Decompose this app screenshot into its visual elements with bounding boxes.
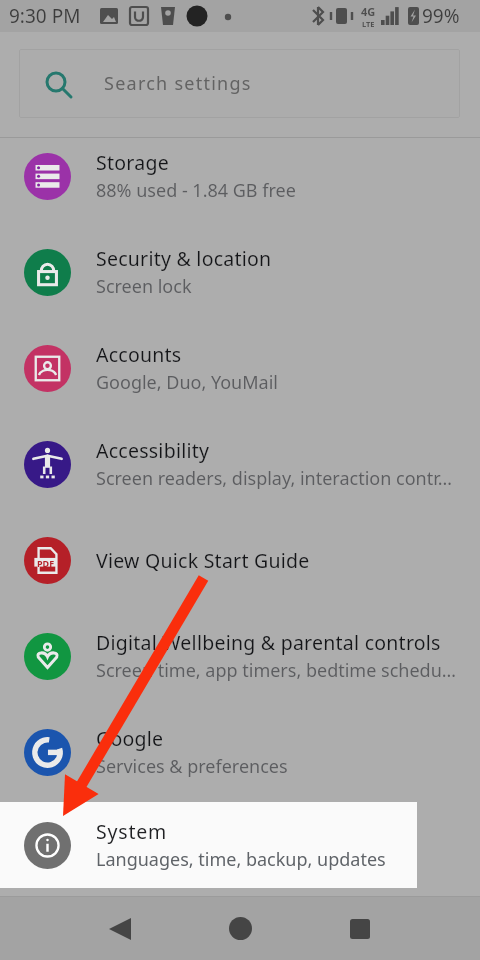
button[interactable]: Google xyxy=(0,704,480,800)
staticText: 99% xyxy=(422,3,460,29)
staticText: Screen readers, display, interaction con… xyxy=(96,466,452,491)
button[interactable]: Security & location xyxy=(0,224,480,320)
staticText: Services & preferences xyxy=(96,754,288,779)
staticText: PDF xyxy=(37,557,55,569)
staticText: Digital Wellbeing & parental controls xyxy=(96,629,441,656)
button[interactable]: PDF xyxy=(0,512,480,608)
button[interactable]: Digital Wellbeing & parental controls xyxy=(0,608,480,704)
staticText: LTE xyxy=(362,19,375,29)
staticText: View Quick Start Guide xyxy=(96,547,310,574)
staticText: Screen time, app timers, bedtime schedu… xyxy=(96,658,456,683)
button[interactable]: Back xyxy=(90,897,150,960)
button[interactable]: Search settings xyxy=(19,49,460,118)
button[interactable]: Recents xyxy=(330,897,390,960)
staticText: 4G xyxy=(361,4,376,19)
staticText: Accounts xyxy=(96,341,182,368)
staticText: Google, Duo, YouMail xyxy=(96,370,278,395)
button[interactable]: Storage xyxy=(0,128,480,224)
staticText: Security & location xyxy=(96,245,272,272)
staticText: 9:30 PM xyxy=(9,3,81,29)
button[interactable]: System xyxy=(0,802,417,888)
staticText: Search settings xyxy=(104,71,252,96)
staticText: 88% used - 1.84 GB free xyxy=(96,178,296,203)
button[interactable]: Accessibility xyxy=(0,416,480,512)
staticText: System xyxy=(96,818,168,845)
staticText: Accessibility xyxy=(96,437,210,464)
staticText: Languages, time, backup, updates xyxy=(96,847,386,872)
staticText: Google xyxy=(96,725,164,752)
button[interactable]: Home xyxy=(210,897,270,960)
staticText: Screen lock xyxy=(96,274,192,299)
button[interactable]: Accounts xyxy=(0,320,480,416)
staticText: Storage xyxy=(96,149,169,176)
